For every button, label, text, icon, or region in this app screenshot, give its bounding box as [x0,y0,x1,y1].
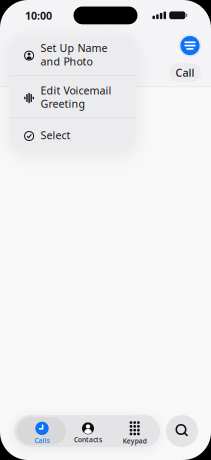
staticText: 10:00 [25,8,52,23]
staticText: Edit Voicemail [40,83,111,97]
staticText: Calls [34,436,49,445]
staticText: Contacts [74,435,102,444]
staticText: Greeting [40,97,85,111]
button[interactable]: Search [166,415,198,447]
button[interactable]: Select [10,118,135,151]
staticText: Call [176,65,195,80]
staticText: Select [40,128,70,142]
staticText: Set Up Name [40,41,107,55]
button[interactable]: Contacts [65,418,111,448]
button[interactable]: Keypad [112,418,158,448]
staticText: Keypad [123,436,147,445]
button[interactable]: Set Up Name [10,35,135,74]
button[interactable]: Calls [19,418,65,448]
button[interactable]: Edit Voicemail [10,76,135,118]
button[interactable]: Filter [179,34,201,57]
button[interactable]: Call [169,63,201,82]
staticText: and Photo [40,54,92,68]
